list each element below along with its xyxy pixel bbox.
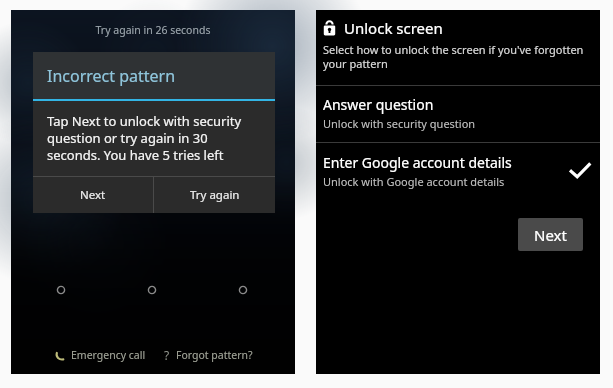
staticText: Tap Next to unlock with security questio… [47,112,259,164]
staticText: Unlock with security question [323,116,476,131]
button[interactable]: Answer question [316,86,600,142]
staticText: Incorrect pattern [47,65,176,87]
staticText: Next [534,225,567,245]
staticText: Next [80,187,106,203]
button[interactable]: Next [33,177,153,213]
staticText: Try again [190,187,240,203]
staticText: Unlock with Google account details [323,174,505,189]
button[interactable]: Try again [154,177,275,213]
button[interactable]: Enter Google account details [316,143,600,200]
staticText: Unlock screen [344,18,443,38]
staticText: ? [164,347,170,363]
staticText: Emergency call [71,348,146,362]
staticText: Answer question [323,95,434,114]
button[interactable]: ? [161,345,256,365]
staticText: Select how to unlock the screen if you'v… [323,42,592,71]
staticText: Try again in 26 seconds [11,23,295,37]
staticText: Forgot pattern? [176,348,253,362]
staticText: Enter Google account details [323,153,512,172]
button[interactable]: Next [518,218,583,251]
button[interactable]: Emergency call [51,346,149,364]
